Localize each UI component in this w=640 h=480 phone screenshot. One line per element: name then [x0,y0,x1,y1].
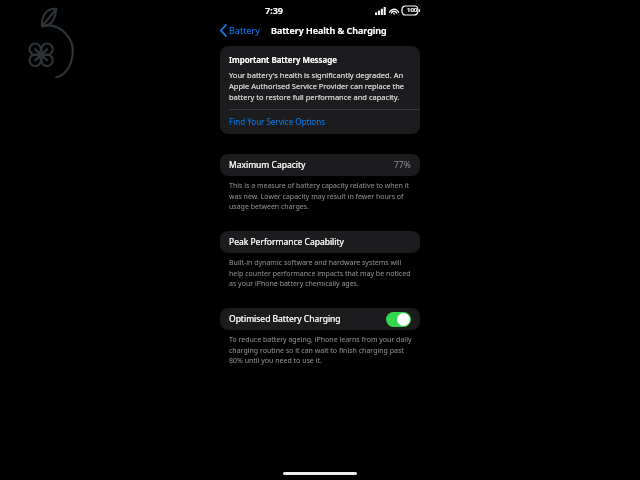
button[interactable]: Maximum Capacity [220,154,420,176]
staticText: Optimised Battery Charging [229,313,341,325]
staticText: 7:39 [265,4,283,16]
staticText: Maximum Capacity [229,159,306,171]
staticText: To reduce battery ageing, iPhone learns … [229,335,415,365]
staticText: Battery Health & Charging [271,24,387,36]
button[interactable]: Optimised Battery Charging [220,308,420,330]
staticText: Important Battery Message [229,54,337,65]
staticText: Built-in dynamic software and hardware s… [229,258,415,288]
staticText: Find Your Service Options [229,116,325,127]
button[interactable]: Find Your Service Options [220,110,420,134]
staticText: 100 [407,6,418,14]
button[interactable]: Optimised Battery Charging toggle [386,312,411,327]
staticText: Battery [229,24,260,36]
staticText: This is a measure of battery capacity re… [229,181,415,211]
button[interactable]: Battery [220,24,260,36]
button[interactable]: Peak Performance Capability [220,231,420,253]
staticText: Peak Performance Capability [229,236,344,248]
staticText: 77% [394,159,411,171]
staticText: Your battery's health is significantly d… [229,70,411,102]
other: Logo [26,6,80,78]
